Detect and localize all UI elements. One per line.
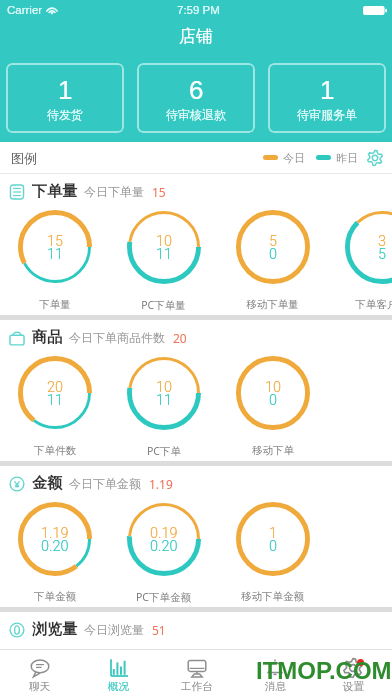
staticText: 51 — [152, 622, 166, 638]
staticText: 5 — [269, 233, 278, 250]
staticText: 10 — [156, 379, 173, 396]
button[interactable]: 10 — [109, 356, 218, 458]
staticText: 今日浏览量 — [84, 622, 144, 637]
staticText: 5 — [378, 246, 387, 263]
button[interactable]: 15 — [0, 210, 109, 311]
button[interactable]: 1 — [6, 63, 124, 133]
staticText: 1 — [58, 75, 73, 104]
staticText: 概况 — [108, 680, 129, 693]
staticText: 7:59 PM — [177, 4, 220, 17]
staticText: 3 — [378, 233, 387, 250]
staticText: 金额 — [32, 474, 62, 493]
staticText: 0.19 — [150, 525, 178, 542]
staticText: 0 — [269, 538, 278, 555]
staticText: 待审服务单 — [297, 107, 357, 122]
staticText: 10 — [265, 379, 282, 396]
button[interactable]: 10 — [218, 356, 327, 457]
staticText: 下单客户数 — [355, 298, 392, 311]
staticText: 昨日 — [336, 151, 358, 165]
staticText: PC下单 — [147, 444, 181, 458]
button[interactable]: 工作台 — [158, 650, 236, 696]
staticText: 移动下单量 — [246, 298, 299, 311]
staticText: 浏览量 — [32, 620, 77, 639]
button[interactable]: 概况 — [79, 650, 158, 696]
staticText: 11 — [47, 392, 64, 409]
staticText: 待审核退款 — [166, 107, 226, 122]
staticText: 1.19 — [149, 476, 173, 492]
button[interactable]: 20 — [0, 356, 109, 457]
staticText: 店铺 — [179, 26, 213, 47]
staticText: 20 — [47, 379, 64, 396]
staticText: Carrier — [7, 4, 43, 17]
button[interactable]: 10 — [109, 210, 218, 312]
button[interactable]: 0.19 — [109, 502, 218, 604]
staticText: 0.20 — [150, 538, 178, 555]
staticText: 今日下单量 — [84, 184, 144, 199]
staticText: 设置 — [343, 680, 364, 693]
button[interactable]: 6 — [137, 63, 255, 133]
staticText: 11 — [156, 392, 173, 409]
staticText: 0 — [269, 392, 278, 409]
button[interactable]: 1 — [218, 502, 327, 603]
staticText: 20 — [173, 330, 187, 346]
staticText: 15 — [152, 184, 166, 200]
staticText: 聊天 — [29, 680, 50, 693]
staticText: PC下单量 — [141, 298, 186, 312]
staticText: 1.19 — [41, 525, 69, 542]
staticText: 11 — [156, 246, 173, 263]
button[interactable]: 1.19 — [0, 502, 109, 603]
staticText: 移动下单 — [252, 444, 294, 457]
button[interactable]: 消息 — [236, 650, 314, 696]
staticText: 消息 — [265, 680, 286, 693]
staticText: 0.20 — [41, 538, 69, 555]
button[interactable]: 3 — [327, 210, 392, 311]
staticText: 今日下单商品件数 — [69, 330, 165, 345]
staticText: PC下单金额 — [136, 590, 191, 604]
staticText: 0 — [269, 246, 278, 263]
staticText: 11 — [47, 246, 64, 263]
staticText: 商品 — [32, 328, 62, 347]
staticText: 1 — [269, 525, 278, 542]
staticText: 今日下单金额 — [69, 476, 141, 491]
staticText: 移动下单金额 — [241, 590, 304, 603]
staticText: 下单金额 — [34, 590, 76, 603]
staticText: 15 — [47, 233, 64, 250]
button[interactable]: 5 — [218, 210, 327, 311]
staticText: 10 — [156, 233, 173, 250]
staticText: 图例 — [11, 150, 37, 166]
button[interactable]: 1 — [268, 63, 386, 133]
staticText: 下单量 — [32, 182, 77, 201]
button[interactable]: 设置 — [314, 650, 392, 696]
staticText: ITMOP.COM — [256, 657, 392, 684]
button[interactable]: 聊天 — [0, 650, 79, 696]
staticText: 今日 — [283, 151, 305, 165]
staticText: 工作台 — [181, 680, 213, 693]
button[interactable]: Settings — [367, 150, 383, 166]
staticText: 下单件数 — [34, 444, 76, 457]
staticText: 1 — [320, 75, 335, 104]
staticText: 6 — [189, 75, 204, 104]
staticText: 待发货 — [47, 107, 83, 122]
staticText: 下单量 — [39, 298, 71, 311]
